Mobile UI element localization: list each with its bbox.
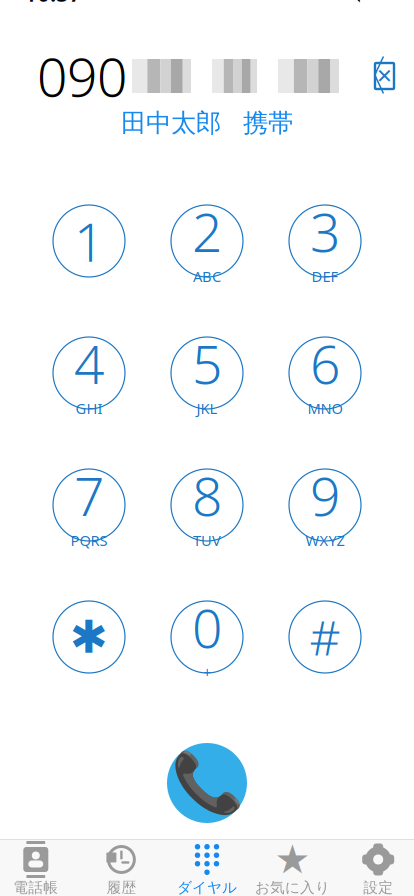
staticText: 田中太郎: [121, 107, 221, 138]
staticText: お気に入り: [255, 878, 330, 896]
staticText: ★: [275, 837, 311, 882]
button[interactable]: 3: [266, 193, 384, 289]
staticText: 0: [192, 592, 222, 663]
staticText: TUV: [193, 531, 221, 550]
button[interactable]: ✱: [30, 589, 148, 685]
button[interactable]: 8: [148, 457, 266, 553]
button[interactable]: 田中太郎: [0, 105, 414, 141]
staticText: 5: [192, 328, 222, 399]
staticText: ✕: [376, 65, 393, 87]
button[interactable]: #: [266, 589, 384, 685]
button[interactable]: 7: [30, 457, 148, 553]
staticText: 10:57: [24, 0, 82, 8]
staticText: ✱: [70, 611, 108, 663]
staticText: 2: [192, 196, 222, 267]
button[interactable]: 履歴: [79, 845, 164, 894]
staticText: 〈: [347, 50, 390, 102]
staticText: 6: [310, 328, 340, 399]
staticText: 📞: [170, 749, 243, 816]
staticText: 8: [192, 460, 222, 531]
button[interactable]: 設定: [335, 845, 414, 894]
button[interactable]: 5: [148, 325, 266, 421]
staticText: MNO: [307, 399, 342, 418]
button[interactable]: 0: [148, 589, 266, 685]
staticText: GHI: [75, 399, 102, 418]
staticText: 090: [37, 41, 127, 111]
staticText: PQRS: [70, 531, 107, 550]
staticText: #: [309, 605, 340, 669]
button[interactable]: 2: [148, 193, 266, 289]
staticText: 履歴: [106, 878, 136, 896]
staticText: 3: [310, 196, 340, 267]
staticText: 設定: [363, 878, 393, 896]
staticText: WXYZ: [305, 531, 344, 550]
staticText: ◥: [344, 0, 359, 4]
button[interactable]: 1: [30, 193, 148, 289]
button[interactable]: 9: [266, 457, 384, 553]
staticText: +: [203, 663, 211, 682]
button[interactable]: 4: [30, 325, 148, 421]
button[interactable]: 6: [266, 325, 384, 421]
button[interactable]: 発信: [159, 735, 255, 831]
button[interactable]: ダイヤル: [164, 845, 250, 894]
staticText: DEF: [311, 267, 338, 286]
staticText: 4: [74, 328, 104, 399]
staticText: 7: [74, 460, 104, 531]
staticText: 携帯: [243, 107, 293, 138]
staticText: ダイヤル: [177, 878, 237, 896]
staticText: 9: [310, 460, 340, 531]
button[interactable]: ★: [250, 845, 335, 894]
button[interactable]: 電話帳: [0, 845, 79, 894]
staticText: ABC: [193, 267, 221, 286]
staticText: JKL: [196, 399, 217, 418]
staticText: 1: [74, 206, 104, 276]
staticText: 電話帳: [13, 878, 58, 896]
button[interactable]: 削除: [347, 53, 409, 99]
